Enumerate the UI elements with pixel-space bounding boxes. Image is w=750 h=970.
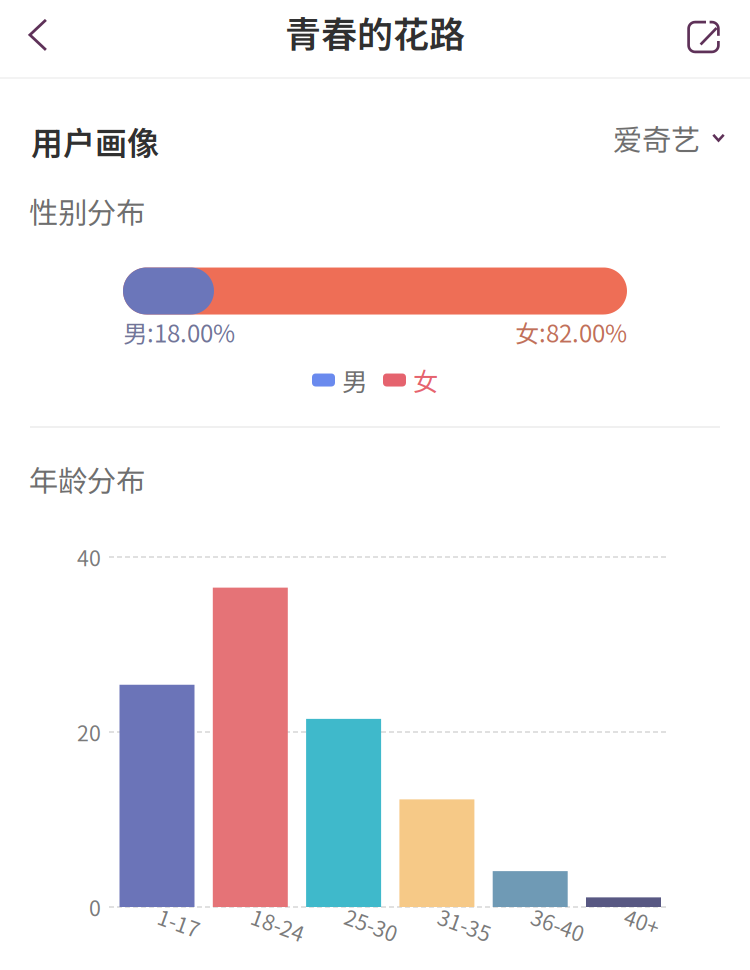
- staticText: 31-35: [439, 900, 494, 930]
- staticText: 女:82.00%: [515, 315, 627, 349]
- staticText: 性别分布: [29, 190, 145, 232]
- staticText: 18-24: [252, 900, 307, 930]
- staticText: 36-40: [532, 900, 587, 930]
- staticText: 用户画像: [31, 118, 159, 164]
- button[interactable]: 爱奇艺: [607, 103, 731, 173]
- staticText: 0: [89, 892, 101, 922]
- staticText: 年龄分布: [29, 458, 145, 500]
- staticText: 男: [342, 362, 367, 398]
- staticText: 爱奇艺: [613, 117, 700, 159]
- staticText: 女: [413, 362, 438, 398]
- staticText: 男:18.00%: [123, 315, 235, 349]
- button[interactable]: Back: [1, 0, 75, 73]
- staticText: 40+: [625, 900, 661, 930]
- button[interactable]: Share: [667, 0, 741, 75]
- staticText: 20: [77, 717, 101, 747]
- staticText: 1-17: [159, 900, 202, 930]
- staticText: 青春的花路: [285, 6, 465, 58]
- staticText: 25-30: [346, 900, 401, 930]
- staticText: 40: [77, 542, 101, 572]
